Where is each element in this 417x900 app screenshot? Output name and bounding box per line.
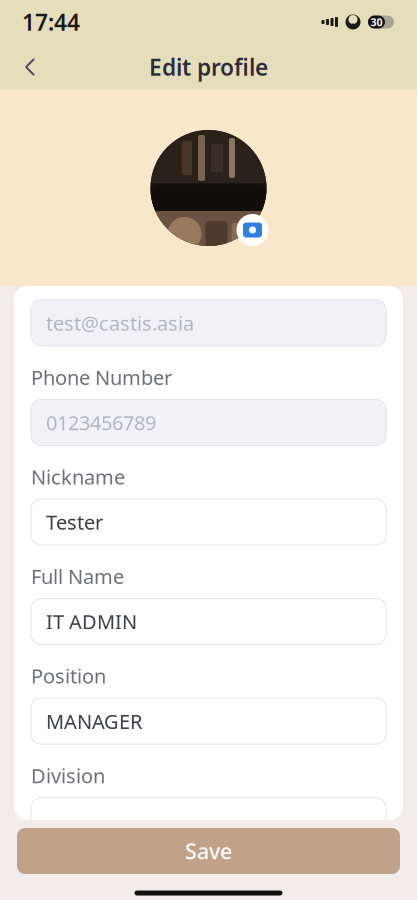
staticText: Position	[31, 663, 106, 689]
staticText: 17:44	[22, 7, 80, 37]
staticText: MANAGER	[46, 708, 142, 734]
staticText: Tester	[46, 509, 103, 535]
button[interactable]: Change profile photo	[234, 212, 270, 248]
staticText: Full Name	[31, 563, 124, 590]
staticText: Phone Number	[31, 364, 172, 390]
staticText: 30	[370, 15, 382, 29]
staticText: test@castis.asia	[46, 310, 194, 336]
staticText: Save	[185, 837, 232, 865]
staticText: Division	[31, 762, 105, 789]
button[interactable]: Save	[17, 828, 400, 874]
staticText: Edit profile	[149, 52, 268, 82]
staticText: 0123456789	[46, 409, 156, 436]
staticText: Email	[31, 264, 82, 291]
staticText: IT ADMIN	[46, 608, 137, 635]
staticText: Nickname	[31, 463, 125, 490]
button[interactable]: Back	[8, 45, 52, 89]
